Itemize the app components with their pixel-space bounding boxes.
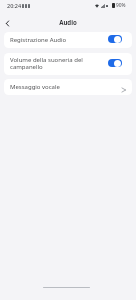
button[interactable]: Volume della suoneria del campanello (4, 53, 132, 75)
staticText: 90% (116, 2, 126, 9)
button[interactable]: Messaggio vocale (4, 79, 132, 95)
staticText: Volume della suoneria del campanello (10, 56, 104, 71)
staticText: Registrazione Audio (10, 36, 104, 44)
button[interactable]: Back (0, 16, 14, 30)
staticText: Messaggio vocale (10, 83, 121, 91)
staticText: Audio (59, 18, 77, 26)
button[interactable]: Registrazione Audio (4, 32, 132, 48)
staticText: 20:24 (7, 2, 22, 9)
